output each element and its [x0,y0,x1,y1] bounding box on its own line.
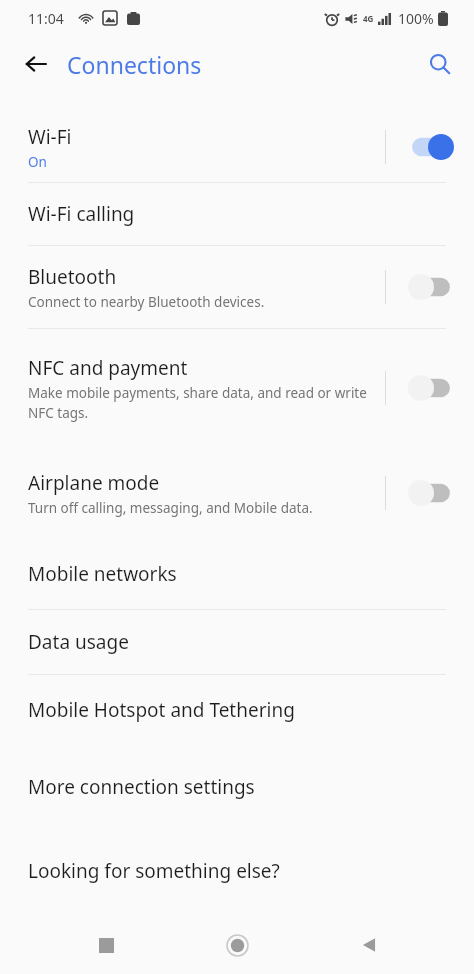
staticText: More connection settings [28,774,255,800]
staticText: Wi-Fi calling [28,201,135,227]
staticText: 11:04 [28,9,64,28]
staticText: Mobile networks [28,561,177,587]
button[interactable]: NFC and payment [0,329,474,447]
staticText: Connections [67,49,202,80]
button[interactable]: Home [211,919,263,971]
button[interactable]: Toggle off [408,274,454,300]
button[interactable]: Airplane mode [0,447,474,539]
button[interactable]: Wi-Fi calling [0,183,474,245]
button[interactable]: Search [418,42,462,86]
button[interactable]: Recents [80,919,132,971]
button[interactable]: Toggle off [408,375,454,401]
button[interactable]: Looking for something else? [0,829,474,913]
staticText: Bluetooth [28,264,117,290]
button[interactable]: Bluetooth [0,246,474,328]
staticText: 4G [363,13,374,24]
staticText: 100% [398,9,434,28]
staticText: Turn off calling, messaging, and Mobile … [28,499,313,517]
staticText: On [28,153,47,171]
staticText: Mobile Hotspot and Tethering [28,697,295,723]
staticText: Connect to nearby Bluetooth devices. [28,293,265,311]
staticText: Wi-Fi [28,124,72,150]
button[interactable]: Back [14,42,58,86]
button[interactable]: Toggle on [408,134,454,160]
button[interactable]: Toggle off [408,480,454,506]
staticText: Make mobile payments, share data, and re… [28,384,375,422]
staticText: Airplane mode [28,470,160,496]
button[interactable]: Mobile networks [0,539,474,609]
staticText: Looking for something else? [28,858,280,884]
button[interactable]: Wi-Fi [0,112,474,182]
button[interactable]: More connection settings [0,745,474,829]
button[interactable]: Data usage [0,610,474,674]
staticText: NFC and payment [28,355,188,381]
staticText: Data usage [28,629,129,655]
button[interactable]: Back [343,919,395,971]
button[interactable]: Mobile Hotspot and Tethering [0,675,474,745]
